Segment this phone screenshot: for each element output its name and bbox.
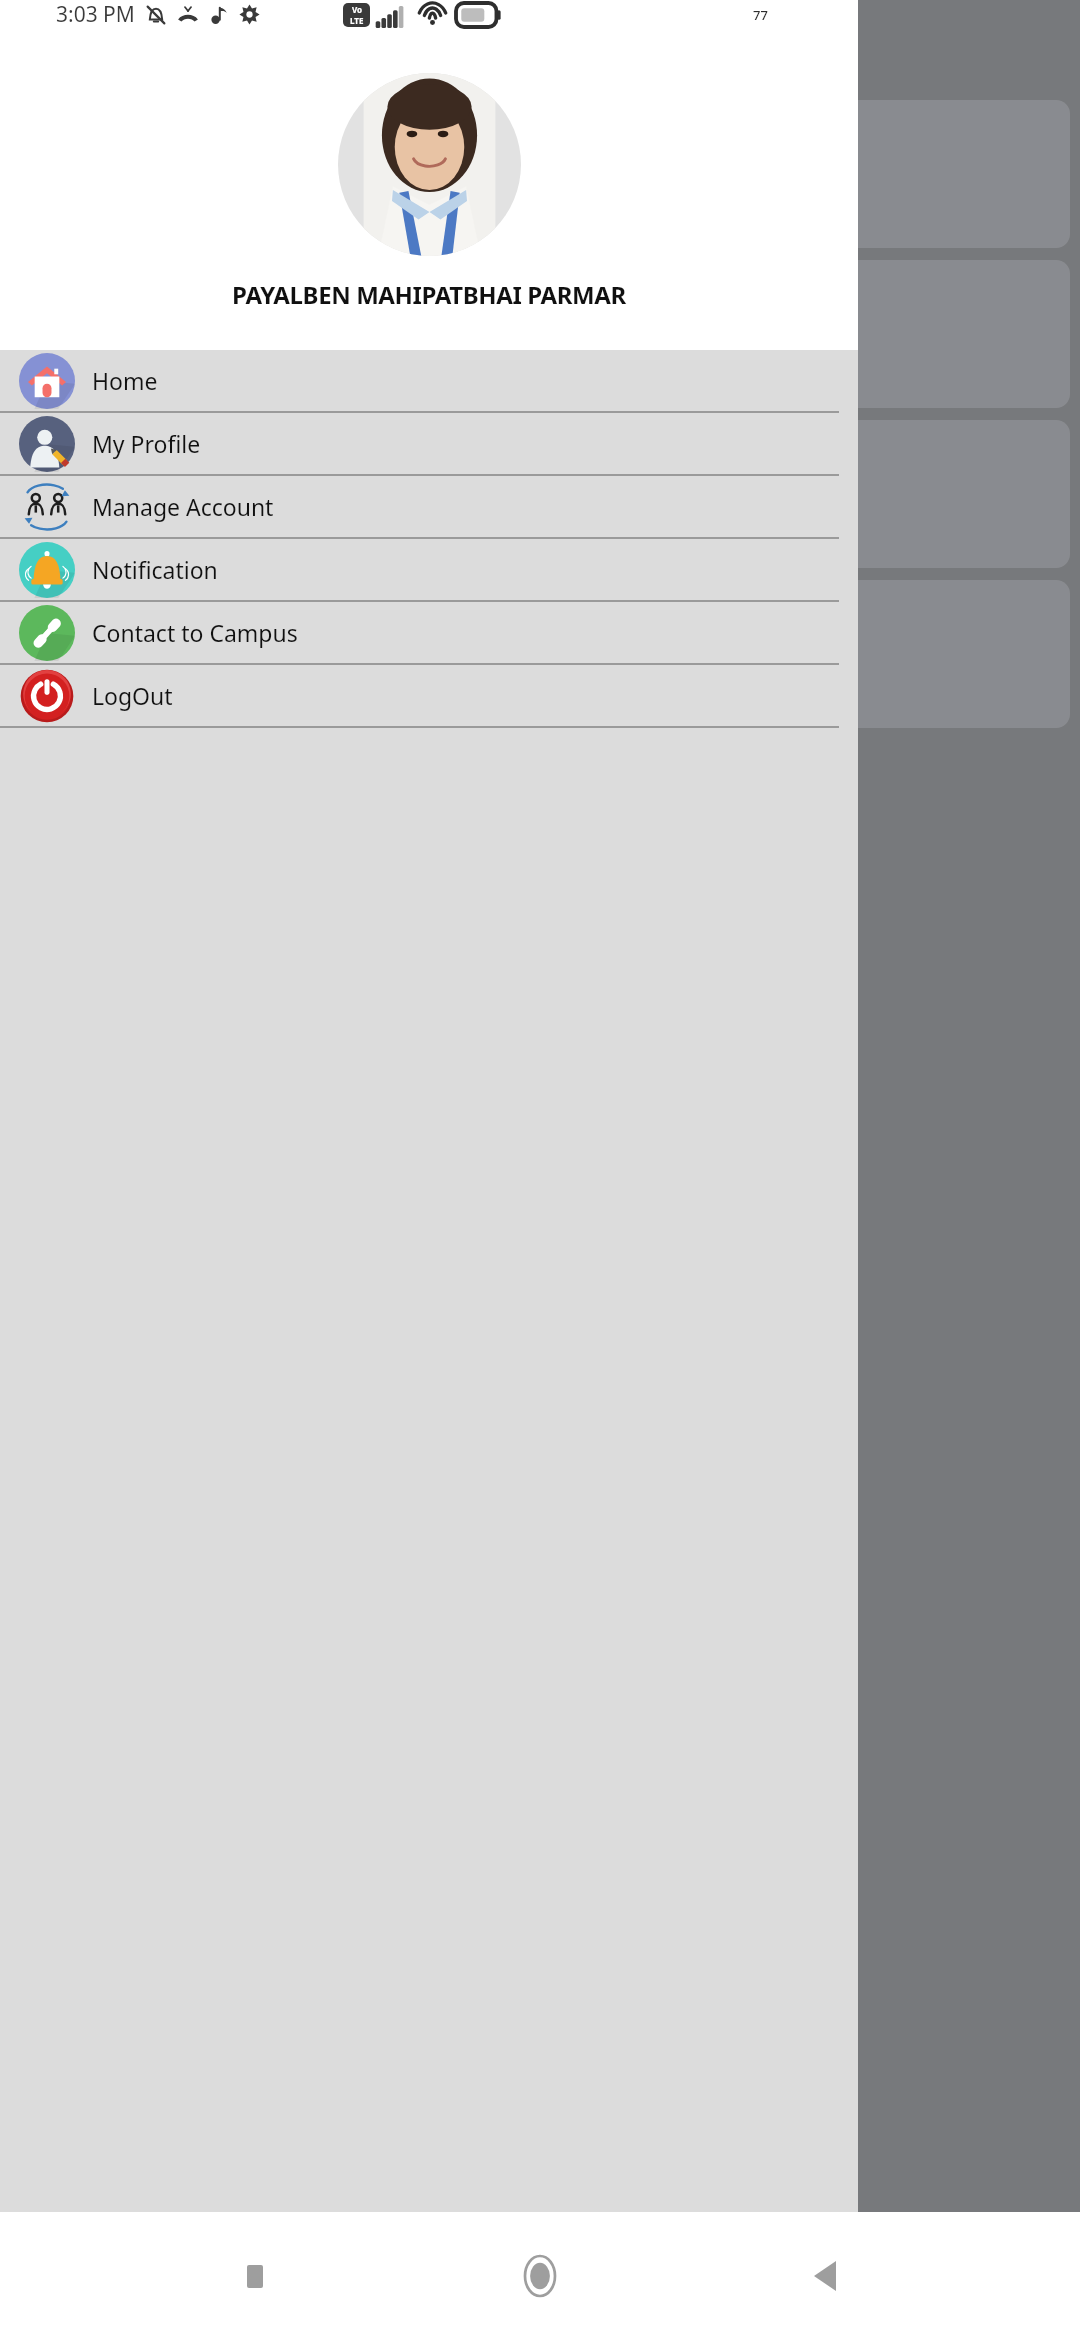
button[interactable]: Notification xyxy=(0,539,858,600)
button[interactable]: rcular xyxy=(735,260,1070,408)
staticText: Manage Account xyxy=(92,491,274,522)
button[interactable]: Manage Account xyxy=(0,476,858,537)
button[interactable]: Home xyxy=(0,350,858,411)
staticText: My Profile xyxy=(92,428,201,459)
staticText: PAYALBEN MAHIPATBHAI PARMAR xyxy=(232,278,626,311)
staticText: Contact to Campus xyxy=(92,617,298,648)
staticText: 3:03 PM xyxy=(56,0,135,29)
staticText: Notification xyxy=(92,554,218,585)
button[interactable]: LogOut xyxy=(0,665,858,726)
button[interactable]: nework xyxy=(735,420,1070,568)
button[interactable]: Home xyxy=(510,2246,570,2306)
staticText: Vo xyxy=(352,4,363,15)
button[interactable]: My Profile xyxy=(0,413,858,474)
button[interactable]: Back xyxy=(795,2246,855,2306)
staticText: LTE xyxy=(350,15,364,26)
button[interactable]: ndance xyxy=(735,100,1070,248)
button[interactable]: Poll xyxy=(735,580,1070,728)
button[interactable]: Recent apps xyxy=(225,2246,285,2306)
button[interactable]: Contact to Campus xyxy=(0,602,858,663)
staticText: LogOut xyxy=(92,680,173,711)
staticText: nework xyxy=(735,530,803,556)
staticText: 77 xyxy=(753,6,768,24)
staticText: Home xyxy=(92,365,158,396)
